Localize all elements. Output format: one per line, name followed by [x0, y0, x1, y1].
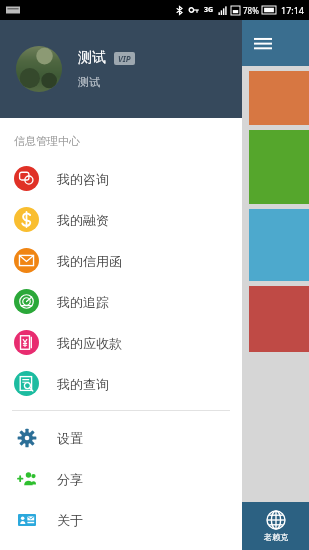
button[interactable]: 我的信用函: [0, 240, 242, 281]
staticText: 老赖克: [264, 532, 288, 542]
button[interactable]: 分享: [0, 458, 242, 499]
staticText: 设置: [57, 430, 83, 446]
staticText: 我的追踪: [57, 294, 109, 310]
button[interactable]: 测试: [0, 20, 242, 118]
button[interactable]: Open navigation menu: [242, 20, 309, 66]
button[interactable]: 我的应收款: [0, 322, 242, 363]
button[interactable]: 老赖克: [242, 502, 309, 550]
staticText: 分享: [57, 471, 83, 487]
staticText: 78%: [243, 5, 259, 16]
staticText: 我的融资: [57, 212, 109, 228]
button[interactable]: 我的查询: [0, 363, 242, 404]
button[interactable]: 我的融资: [0, 199, 242, 240]
button[interactable]: 我的追踪: [0, 281, 242, 322]
staticText: 17:14: [281, 4, 305, 16]
staticText: 关于: [57, 512, 83, 528]
staticText: 信息管理中心: [14, 134, 80, 148]
staticText: 3G: [204, 5, 214, 15]
staticText: 我的信用函: [57, 253, 122, 269]
button[interactable]: 我的咨询: [0, 158, 242, 199]
button[interactable]: 关于: [0, 499, 242, 540]
staticText: 我的查询: [57, 376, 109, 392]
staticText: 我的应收款: [57, 335, 122, 351]
staticText: 我的咨询: [57, 171, 109, 187]
staticText: 测试: [78, 49, 106, 67]
staticText: 测试: [78, 75, 100, 89]
button[interactable]: 设置: [0, 417, 242, 458]
staticText: VIP: [118, 53, 131, 64]
